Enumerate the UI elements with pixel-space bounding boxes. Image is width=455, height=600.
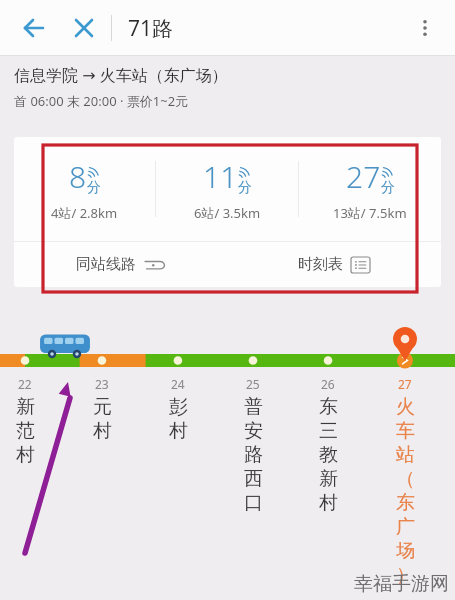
staticText: 村 <box>93 419 112 443</box>
staticText: 时刻表 <box>298 255 343 274</box>
staticText: 村 <box>16 443 35 467</box>
staticText: 信息学院 → 火车站（东广场） <box>14 64 228 86</box>
staticText: 71路 <box>128 14 174 43</box>
staticText: 27 <box>398 376 412 392</box>
staticText: 彭 <box>169 395 188 419</box>
button[interactable]: 8 <box>14 137 155 241</box>
staticText: 火 <box>396 395 415 419</box>
button[interactable]: Close <box>62 6 106 50</box>
staticText: 25 <box>246 376 260 392</box>
button[interactable]: 时刻表 <box>227 242 441 287</box>
staticText: 首 06:00 末 20:00 · 票价1~2元 <box>14 92 189 110</box>
staticText: 场 <box>396 539 415 563</box>
staticText: 村 <box>169 419 188 443</box>
staticText: 普 <box>244 395 263 419</box>
staticText: 东 <box>319 395 338 419</box>
staticText: 口 <box>244 491 263 515</box>
staticText: 安 <box>244 419 263 443</box>
staticText: 元 <box>93 395 112 419</box>
staticText: 路 <box>244 443 263 467</box>
staticText: 村 <box>319 491 338 515</box>
staticText: 13站/ 7.5km <box>333 204 407 222</box>
staticText: 22 <box>18 376 32 392</box>
staticText: 26 <box>321 376 335 392</box>
button[interactable]: 27 <box>299 137 441 241</box>
button[interactable]: Back <box>12 6 56 50</box>
staticText: 同站线路 <box>76 255 136 274</box>
staticText: 4站/ 2.8km <box>51 204 118 222</box>
staticText: ） <box>396 563 415 587</box>
staticText: 东 <box>396 491 415 515</box>
staticText: 车 <box>396 419 415 443</box>
staticText: 27 <box>346 156 381 197</box>
staticText: 三 <box>319 419 338 443</box>
staticText: 24 <box>171 376 185 392</box>
staticText: 新 <box>319 467 338 491</box>
staticText: 站 <box>396 443 415 467</box>
staticText: 广 <box>396 515 415 539</box>
staticText: 6站/ 3.5km <box>194 204 261 222</box>
staticText: 23 <box>95 376 109 392</box>
staticText: 8 <box>69 156 87 197</box>
staticText: （ <box>396 467 415 491</box>
button[interactable]: 11 <box>156 137 298 241</box>
staticText: 11 <box>203 156 238 197</box>
staticText: 新 <box>16 395 35 419</box>
button[interactable]: More options <box>403 6 447 50</box>
staticText: 教 <box>319 443 338 467</box>
staticText: 分 <box>87 179 101 197</box>
button[interactable]: 同站线路 <box>14 242 227 287</box>
staticText: 西 <box>244 467 263 491</box>
staticText: 幸福手游网 <box>354 572 449 596</box>
staticText: 分 <box>381 179 395 197</box>
staticText: 范 <box>16 419 35 443</box>
staticText: 分 <box>238 179 252 197</box>
